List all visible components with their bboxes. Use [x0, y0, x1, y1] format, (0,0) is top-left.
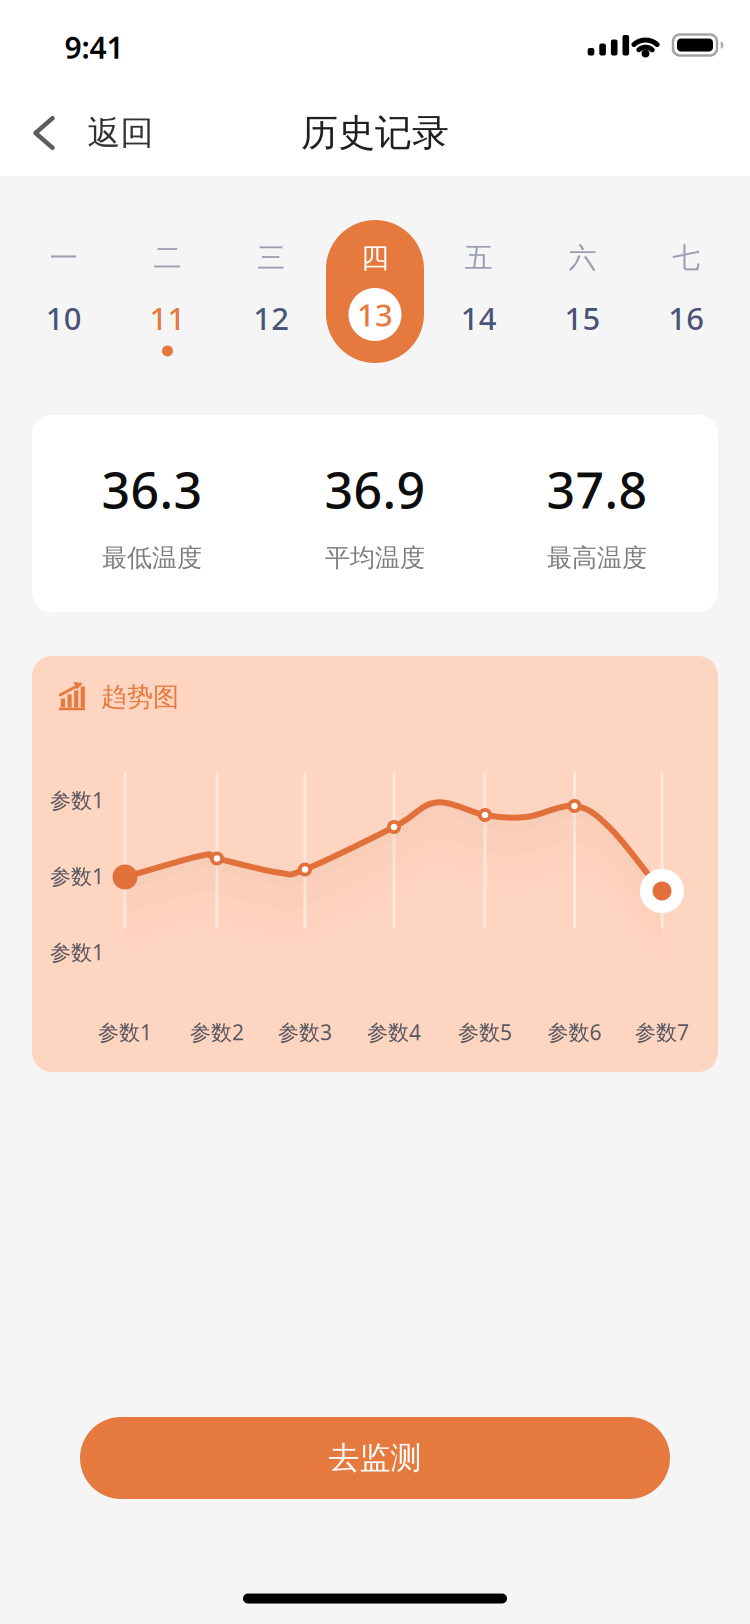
staticText: 参数2	[190, 1018, 244, 1046]
staticText: 最低温度	[102, 542, 202, 574]
button[interactable]: 四 13	[326, 220, 424, 363]
staticText: 平均温度	[325, 542, 425, 574]
staticText: 参数1	[50, 938, 104, 966]
button[interactable]: 五 14	[430, 220, 528, 363]
staticText: 参数6	[547, 1018, 601, 1046]
staticText: 二	[153, 240, 181, 276]
staticText: 参数1	[50, 786, 104, 814]
staticText: 最高温度	[547, 542, 647, 574]
staticText: 16	[668, 297, 704, 339]
staticText: 36.3	[101, 455, 202, 523]
button[interactable]: 三 12	[222, 220, 320, 363]
staticText: 历史记录	[301, 110, 449, 156]
button[interactable]: 二 11	[118, 220, 216, 363]
staticText: 去监测	[328, 1438, 421, 1478]
staticText: 14	[461, 297, 497, 339]
staticText: 10	[46, 297, 82, 339]
staticText: 13	[357, 293, 393, 336]
staticText: 参数3	[278, 1018, 332, 1046]
staticText: 四	[361, 240, 389, 276]
staticText: 参数4	[367, 1018, 421, 1046]
staticText: 返回	[87, 112, 153, 154]
staticText: 趋势图	[101, 681, 179, 713]
staticText: 37.8	[546, 455, 647, 523]
staticText: 一	[50, 240, 78, 276]
staticText: 12	[253, 297, 289, 339]
staticText: 11	[149, 297, 185, 339]
staticText: 参数7	[635, 1018, 689, 1046]
button[interactable]: 一 10	[15, 220, 113, 363]
staticText: 七	[672, 240, 700, 276]
button[interactable]: 六 15	[533, 220, 631, 363]
button[interactable]: 返回	[31, 108, 155, 158]
staticText: 9:41	[64, 27, 123, 67]
staticText: 参数1	[50, 862, 104, 890]
staticText: 三	[257, 240, 285, 276]
staticText: 15	[564, 297, 600, 339]
staticText: 参数5	[458, 1018, 512, 1046]
button[interactable]: 七 16	[637, 220, 735, 363]
staticText: 六	[568, 240, 596, 276]
staticText: 36.9	[324, 455, 425, 523]
staticText: 五	[465, 240, 493, 276]
staticText: 参数1	[98, 1018, 152, 1046]
button[interactable]: 去监测	[80, 1417, 670, 1499]
